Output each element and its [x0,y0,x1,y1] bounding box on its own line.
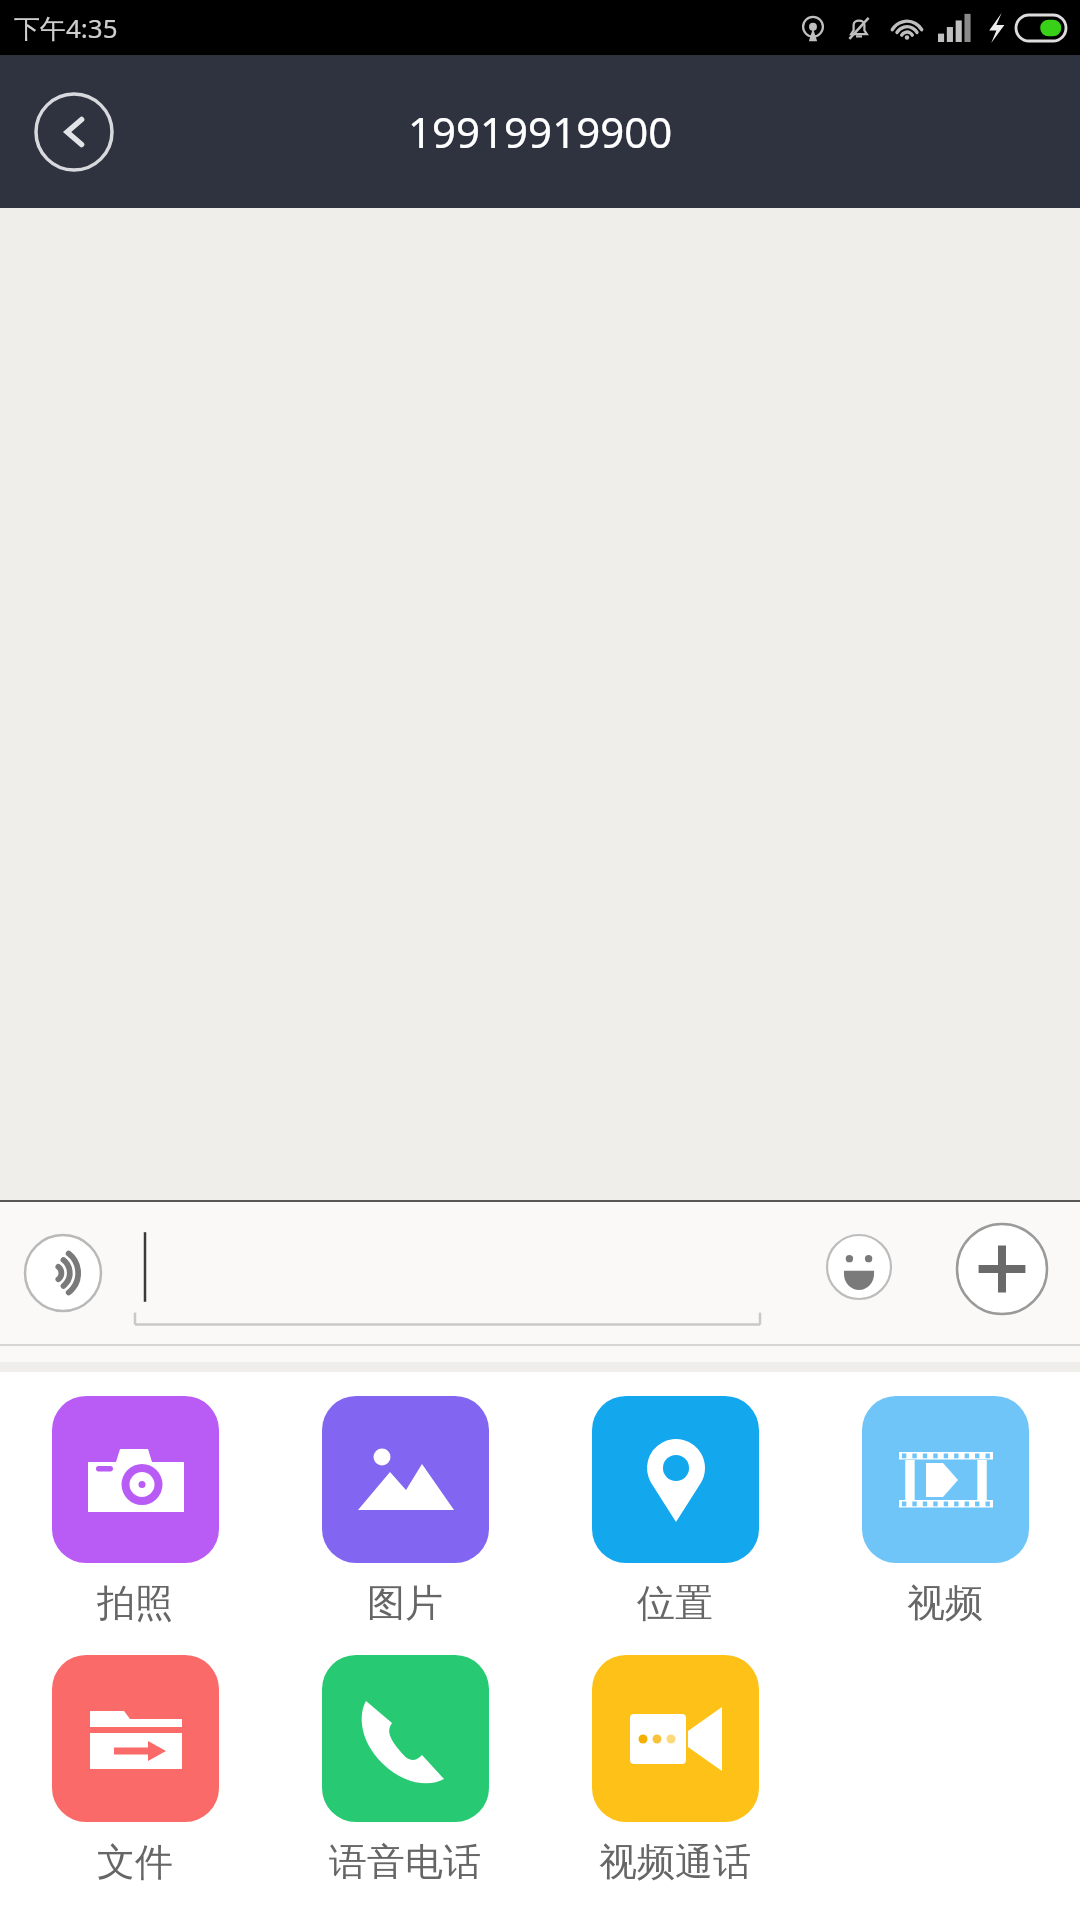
button[interactable]: Emoji [823,1231,895,1303]
staticText: 文件 [97,1838,173,1886]
button[interactable]: 语音电话 [270,1655,540,1886]
button[interactable]: 拍照 [0,1396,270,1627]
button[interactable] [135,1213,760,1333]
staticText: 拍照 [97,1579,173,1627]
staticText: 图片 [367,1579,443,1627]
button[interactable]: 视频 [810,1396,1080,1627]
staticText: 视频 [907,1579,983,1627]
button[interactable]: Voice input [20,1230,106,1316]
button[interactable]: 文件 [0,1655,270,1886]
button[interactable]: Back [30,88,118,176]
button[interactable]: 视频通话 [540,1655,810,1886]
staticText: 语音电话 [329,1838,481,1886]
staticText: 19919919900 [408,103,673,160]
staticText: 位置 [637,1579,713,1627]
staticText: 下午4:35 [14,10,118,46]
button[interactable]: 位置 [540,1396,810,1627]
button[interactable]: More [952,1219,1052,1319]
button[interactable]: 图片 [270,1396,540,1627]
staticText: 视频通话 [599,1838,751,1886]
